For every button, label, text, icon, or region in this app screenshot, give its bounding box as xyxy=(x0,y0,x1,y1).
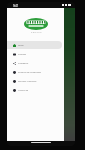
staticText: Cultivos xyxy=(18,53,27,56)
staticText: Inicio xyxy=(18,44,24,47)
button[interactable]: Compartir xyxy=(7,59,62,67)
staticText: Permiso Adicional xyxy=(18,80,37,83)
staticText: Compartir xyxy=(18,62,29,65)
staticText: F R U T A S xyxy=(31,31,42,34)
button[interactable]: Permiso Adicional xyxy=(7,77,62,85)
button[interactable]: Acerca de xyxy=(7,86,62,94)
staticText: Acerca de xyxy=(18,89,28,92)
staticText: Politicas de Privacidad xyxy=(18,71,41,74)
staticText: 9:41 xyxy=(13,4,19,8)
button[interactable]: Inicio xyxy=(7,41,62,49)
button[interactable]: Cultivos xyxy=(7,50,62,58)
button[interactable]: Politicas de Privacidad xyxy=(7,68,62,76)
